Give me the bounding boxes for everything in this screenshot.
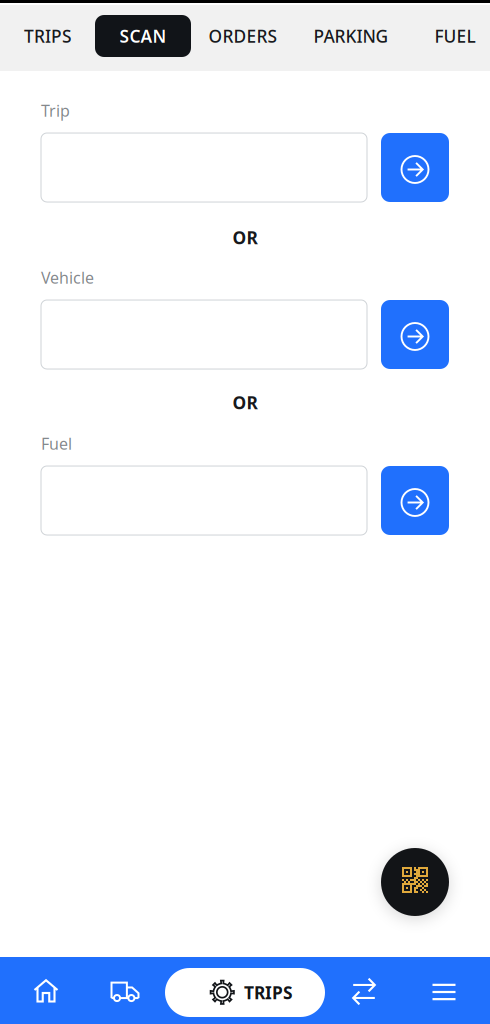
- button[interactable]: ORDERS: [207, 17, 279, 55]
- button[interactable]: Deliveries: [99, 965, 151, 1017]
- staticText: ORDERS: [208, 24, 277, 47]
- staticText: TRIPS: [24, 24, 72, 47]
- button[interactable]: Continue with Fuel: [381, 466, 449, 535]
- button[interactable]: Transfers: [338, 966, 390, 1018]
- button[interactable]: Menu: [418, 966, 470, 1018]
- staticText: Vehicle: [41, 267, 94, 288]
- button[interactable]: Continue with Trip: [381, 133, 449, 202]
- staticText: SCAN: [119, 24, 166, 47]
- button[interactable]: Scan QR code: [381, 848, 449, 916]
- staticText: TRIPS: [244, 981, 293, 1004]
- staticText: OR: [232, 391, 257, 414]
- staticText: Trip: [41, 100, 70, 121]
- button[interactable]: TRIPS: [24, 17, 72, 55]
- button[interactable]: FUEL: [433, 17, 477, 55]
- staticText: PARKING: [313, 24, 388, 47]
- button[interactable]: PARKING: [313, 17, 389, 55]
- button[interactable]: Home: [20, 965, 72, 1017]
- button[interactable]: SCAN: [95, 15, 191, 57]
- button[interactable]: Continue with Vehicle: [381, 300, 449, 369]
- button[interactable]: TRIPS: [165, 968, 325, 1017]
- staticText: OR: [232, 226, 257, 249]
- staticText: FUEL: [434, 24, 475, 47]
- staticText: Fuel: [41, 433, 72, 454]
